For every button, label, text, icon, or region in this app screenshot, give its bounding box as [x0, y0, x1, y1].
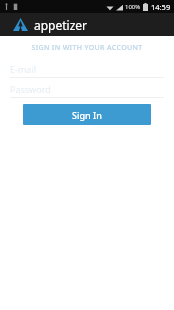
button[interactable]: E-mail: [0, 63, 174, 78]
staticText: Sign In: [72, 109, 102, 121]
staticText: E-mail: [10, 63, 37, 75]
button[interactable]: Sign In: [23, 104, 151, 125]
staticText: 100%: [125, 3, 141, 11]
other: Appetizer logo: [13, 18, 28, 31]
staticText: 14:59: [151, 2, 171, 12]
button[interactable]: Password: [0, 83, 174, 98]
staticText: Password: [10, 83, 51, 95]
staticText: appetizer: [34, 17, 88, 33]
staticText: SIGN IN WITH YOUR ACCOUNT: [0, 43, 174, 53]
